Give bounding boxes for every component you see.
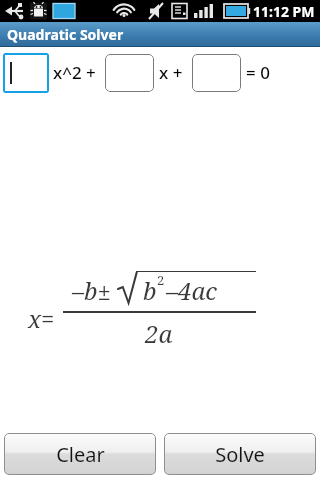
staticText: –4ac	[166, 274, 217, 307]
staticText: Clear	[56, 441, 105, 468]
staticText: Solve	[215, 441, 265, 468]
staticText: = 0	[246, 61, 270, 84]
staticText: –b±	[72, 274, 111, 307]
staticText: Quadratic Solver	[7, 25, 124, 44]
button[interactable]	[3, 53, 49, 93]
staticText: b	[143, 274, 157, 307]
staticText: 11:12 PM	[253, 2, 315, 21]
button[interactable]: Solve	[164, 433, 316, 475]
button[interactable]	[192, 54, 241, 92]
staticText: 2	[157, 271, 165, 289]
button[interactable]	[105, 54, 154, 92]
staticText: x=	[28, 302, 55, 335]
staticText: x +	[159, 61, 183, 84]
staticText: x^2 +	[53, 61, 96, 84]
staticText: 2a	[145, 317, 173, 350]
button[interactable]: Clear	[4, 433, 156, 475]
